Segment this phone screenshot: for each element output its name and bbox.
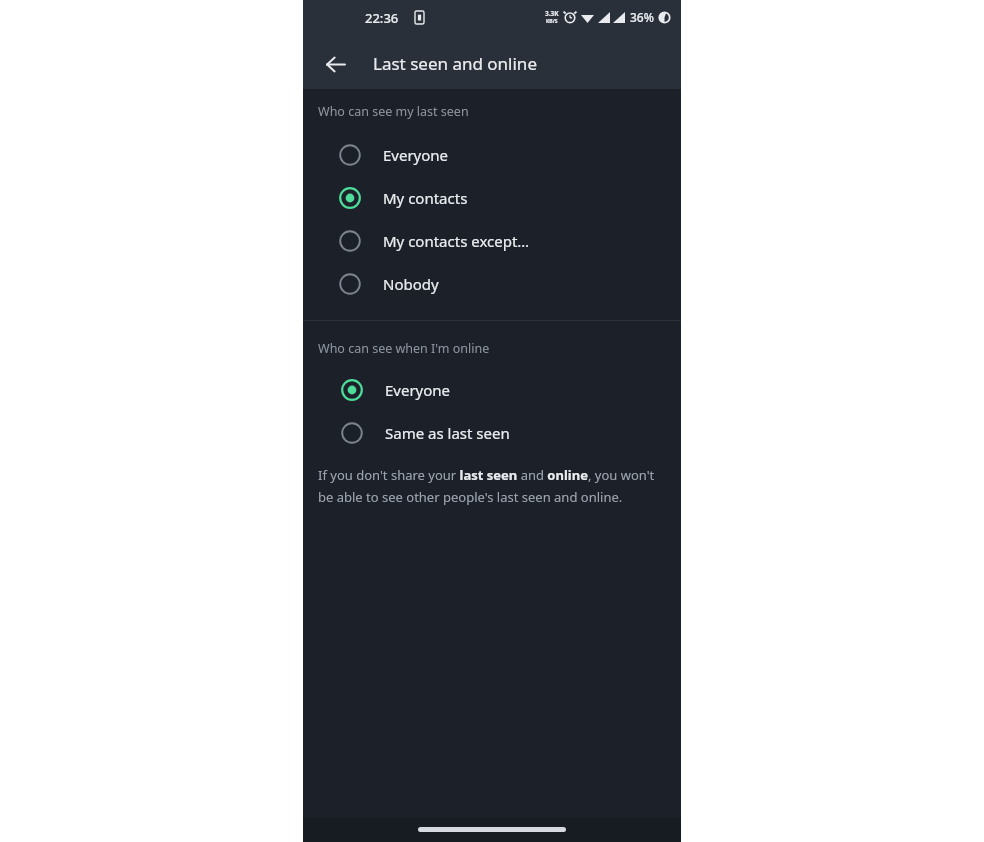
staticText: Everyone: [385, 380, 451, 400]
staticText: KB/S: [546, 18, 558, 25]
staticText: My contacts except…: [383, 231, 530, 251]
button[interactable]: My contacts except…: [303, 219, 681, 262]
button[interactable]: Everyone: [303, 368, 681, 411]
staticText: Nobody: [383, 274, 439, 294]
staticText: 3.3K: [545, 9, 559, 18]
staticText: Everyone: [383, 145, 449, 165]
staticText: If you don't share your last seen and on…: [318, 466, 659, 506]
staticText: Who can see when I'm online: [318, 340, 490, 357]
staticText: Last seen and online: [373, 52, 537, 75]
staticText: 22:36: [365, 9, 399, 27]
button[interactable]: Nobody: [303, 262, 681, 305]
staticText: Who can see my last seen: [318, 103, 469, 120]
staticText: My contacts: [383, 188, 468, 208]
staticText: 36%: [630, 9, 654, 25]
button[interactable]: Everyone: [303, 133, 681, 176]
staticText: Same as last seen: [385, 423, 510, 443]
button[interactable]: Back: [317, 46, 353, 82]
button[interactable]: Same as last seen: [303, 411, 681, 454]
button[interactable]: My contacts: [303, 176, 681, 219]
